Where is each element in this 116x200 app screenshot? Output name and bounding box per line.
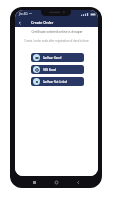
button[interactable]: Back [15,18,25,27]
staticText: Jio 4G •• [19,12,32,16]
button[interactable]: PAN Based [31,65,84,74]
staticText: Aadhaar Based [43,56,62,60]
button[interactable]: Aadhaar Based [31,53,84,62]
button[interactable]: Back [74,178,82,186]
staticText: Create / order seals after registration … [24,39,89,43]
staticText: PAN Based [43,68,57,72]
button[interactable]: Aadhaar Not Linked [31,77,84,86]
staticText: Certificate ordered online is cheaper [31,30,83,34]
staticText: Create Order [31,20,54,25]
button[interactable]: Home [52,178,60,186]
button[interactable]: Recents [30,178,38,186]
staticText: Aadhaar Not Linked [43,80,68,84]
